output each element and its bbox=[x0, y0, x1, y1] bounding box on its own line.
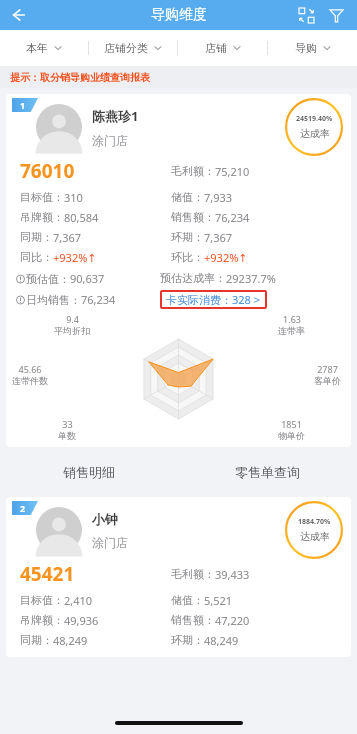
staticText: 48,249 bbox=[204, 633, 239, 648]
staticText: 76010 bbox=[20, 158, 75, 184]
staticText: 物单价 bbox=[278, 430, 305, 441]
staticText: 吊牌额： bbox=[20, 210, 64, 224]
staticText: 47,220 bbox=[215, 613, 250, 628]
staticText: 7,933 bbox=[204, 190, 233, 205]
staticText: 48,249 bbox=[53, 633, 88, 648]
staticText: 日均销售： bbox=[26, 293, 81, 307]
staticText: 储值： bbox=[171, 190, 204, 204]
staticText: 储值： bbox=[171, 593, 204, 607]
staticText: 2,410 bbox=[64, 593, 93, 608]
staticText: 小钟 bbox=[92, 511, 118, 527]
staticText: 1.63 bbox=[283, 313, 301, 325]
button[interactable]: 本年 bbox=[0, 30, 88, 66]
button[interactable]: Back bbox=[0, 0, 36, 30]
staticText: 24519.40% bbox=[296, 114, 333, 124]
staticText: 1884.70% bbox=[298, 517, 331, 527]
staticText: 平均折扣 bbox=[54, 325, 90, 336]
staticText: 同期： bbox=[20, 633, 53, 647]
staticText: 7,367 bbox=[53, 230, 82, 245]
staticText: 吊牌额： bbox=[20, 613, 64, 627]
staticText: 80,584 bbox=[64, 210, 99, 225]
staticText: 导购 bbox=[295, 41, 317, 55]
staticText: 销售额： bbox=[171, 613, 215, 627]
staticText: 9.4 bbox=[66, 313, 79, 325]
staticText: +932%↑ bbox=[204, 250, 248, 265]
staticText: 预估值： bbox=[26, 272, 70, 286]
staticText: 同期： bbox=[20, 230, 53, 244]
staticText: 2 bbox=[20, 502, 26, 514]
staticText: 预估达成率： bbox=[160, 271, 226, 285]
button[interactable]: 店铺 bbox=[178, 30, 267, 66]
staticText: 7,367 bbox=[204, 230, 233, 245]
staticText: 达成率 bbox=[300, 530, 330, 543]
staticText: 2787 bbox=[317, 363, 338, 375]
staticText: 76,234 bbox=[215, 210, 250, 225]
staticText: 销售明细 bbox=[63, 464, 115, 480]
staticText: 同比： bbox=[20, 250, 53, 264]
staticText: 39,433 bbox=[215, 567, 250, 582]
staticText: 达成率 bbox=[300, 127, 330, 140]
staticText: 环期： bbox=[171, 230, 204, 244]
staticText: 连带件数 bbox=[12, 375, 48, 386]
staticText: 310 bbox=[64, 190, 83, 205]
staticText: 环期： bbox=[171, 633, 204, 647]
button[interactable]: 店铺分类 bbox=[89, 30, 177, 66]
staticText: 本年 bbox=[26, 41, 48, 55]
staticText: 5,521 bbox=[204, 593, 233, 608]
staticText: +932%↑ bbox=[53, 250, 97, 265]
staticText: 客单价 bbox=[314, 375, 341, 386]
staticText: 29237.7% bbox=[226, 271, 276, 286]
staticText: 环比： bbox=[171, 250, 204, 264]
staticText: 76,234 bbox=[81, 292, 116, 307]
staticText: 49,936 bbox=[64, 613, 99, 628]
staticText: 销售额： bbox=[171, 210, 215, 224]
button[interactable]: 导购 bbox=[268, 30, 357, 66]
staticText: 1851 bbox=[281, 418, 302, 430]
button[interactable]: 2 bbox=[6, 497, 351, 657]
button[interactable]: 销售明细 bbox=[0, 455, 178, 489]
button[interactable]: Compare bbox=[291, 0, 321, 30]
staticText: 目标值： bbox=[20, 190, 64, 204]
staticText: 毛利额： bbox=[171, 567, 215, 581]
staticText: 提示：取分销导购业绩查询报表 bbox=[10, 71, 150, 84]
staticText: 零售单查询 bbox=[235, 464, 300, 480]
staticText: 卡实际消费： bbox=[166, 293, 232, 307]
staticText: 陈燕珍1 bbox=[92, 107, 139, 125]
staticText: 涂门店 bbox=[92, 133, 128, 148]
staticText: 毛利额： bbox=[171, 164, 215, 178]
staticText: 45421 bbox=[20, 561, 75, 587]
staticText: 90,637 bbox=[70, 271, 105, 286]
staticText: 店铺分类 bbox=[104, 41, 148, 55]
staticText: 目标值： bbox=[20, 593, 64, 607]
staticText: 店铺 bbox=[205, 41, 227, 55]
staticText: 328 > bbox=[232, 292, 261, 307]
staticText: 涂门店 bbox=[92, 535, 128, 550]
staticText: 75,210 bbox=[215, 164, 250, 179]
button[interactable]: Filter bbox=[321, 0, 351, 30]
staticText: 单数 bbox=[58, 430, 76, 441]
staticText: 45.66 bbox=[18, 363, 42, 375]
staticText: 1 bbox=[20, 99, 26, 111]
button[interactable]: 1 bbox=[6, 94, 351, 447]
button[interactable]: 零售单查询 bbox=[178, 455, 357, 489]
staticText: 导购维度 bbox=[151, 6, 207, 24]
button[interactable]: 卡实际消费： bbox=[160, 290, 267, 309]
staticText: 33 bbox=[62, 418, 73, 430]
staticText: 连带率 bbox=[278, 325, 305, 336]
